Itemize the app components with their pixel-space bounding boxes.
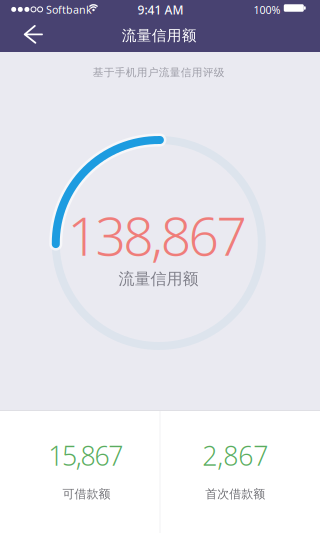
staticText: 可借款额	[62, 487, 110, 501]
staticText: 首次借款额	[205, 487, 265, 501]
staticText: 100%	[253, 3, 280, 17]
staticText: 2,867	[202, 438, 268, 473]
staticText: 15,867	[48, 438, 123, 473]
staticText: 138,867	[68, 200, 246, 270]
staticText: Softbank	[46, 3, 92, 17]
button[interactable]	[8, 20, 52, 52]
staticText: 流量信用额	[122, 27, 197, 45]
staticText: 9:41 AM	[137, 2, 183, 18]
staticText: 流量信用额	[118, 269, 198, 289]
staticText: 基于手机用户流量信用评级	[93, 66, 225, 79]
